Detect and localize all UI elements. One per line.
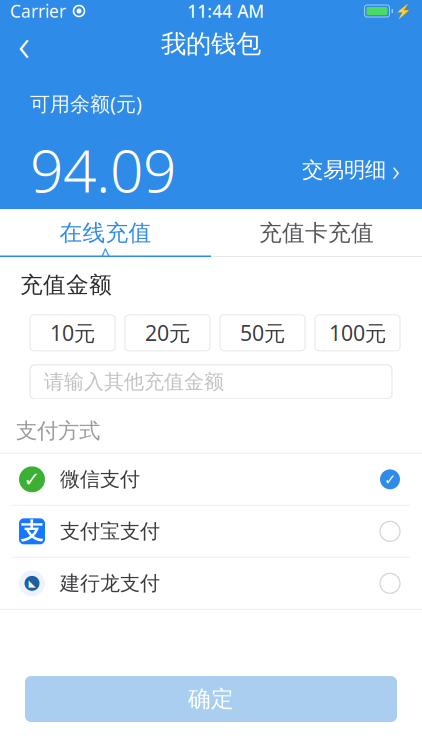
staticText: 支 xyxy=(20,517,43,545)
staticText: › xyxy=(392,150,400,189)
staticText: 支付方式 xyxy=(16,418,100,444)
staticText: 充值金额 xyxy=(20,271,112,299)
staticText: 11:44 AM xyxy=(187,0,264,22)
button[interactable]: 10元 xyxy=(30,315,115,351)
button[interactable]: ◣ xyxy=(0,558,422,609)
button[interactable]: 支 xyxy=(0,506,422,557)
button[interactable]: ✓ xyxy=(0,454,422,505)
staticText: 微信支付 xyxy=(60,467,140,492)
staticText: 20元 xyxy=(145,319,190,347)
staticText: ✓ xyxy=(23,468,40,491)
button[interactable]: 在线充值 xyxy=(0,209,211,256)
staticText: Carrier xyxy=(10,0,66,22)
staticText: ‹ xyxy=(18,14,30,74)
button[interactable]: 充值卡充值 xyxy=(211,209,422,256)
staticText: 充值卡充值 xyxy=(259,219,374,247)
staticText: 请输入其他充值金额 xyxy=(44,370,224,394)
staticText: 10元 xyxy=(50,319,95,347)
staticText: 100元 xyxy=(329,319,386,347)
staticText: 建行龙支付 xyxy=(60,571,160,596)
button[interactable]: 请输入其他充值金额 xyxy=(30,365,392,399)
staticText: 在线充值 xyxy=(59,219,151,247)
staticText: ✓ xyxy=(384,471,396,488)
button[interactable]: 交易明细 xyxy=(302,142,422,197)
button[interactable]: 100元 xyxy=(315,315,400,351)
button[interactable]: 20元 xyxy=(125,315,210,351)
staticText: 支付宝支付 xyxy=(60,519,160,544)
staticText: ⚡ xyxy=(395,3,412,19)
staticText: 可用余额(元) xyxy=(30,90,142,117)
staticText: 确定 xyxy=(188,685,234,713)
staticText: ^ xyxy=(100,243,110,266)
staticText: 交易明细 xyxy=(302,157,386,183)
staticText: 94.09 xyxy=(30,131,176,209)
staticText: 我的钱包 xyxy=(161,28,261,59)
button[interactable]: Back xyxy=(0,22,48,66)
button[interactable]: 确定 xyxy=(25,676,397,722)
staticText: 50元 xyxy=(240,319,285,347)
staticText: ◣ xyxy=(28,578,35,589)
button[interactable]: 50元 xyxy=(220,315,305,351)
